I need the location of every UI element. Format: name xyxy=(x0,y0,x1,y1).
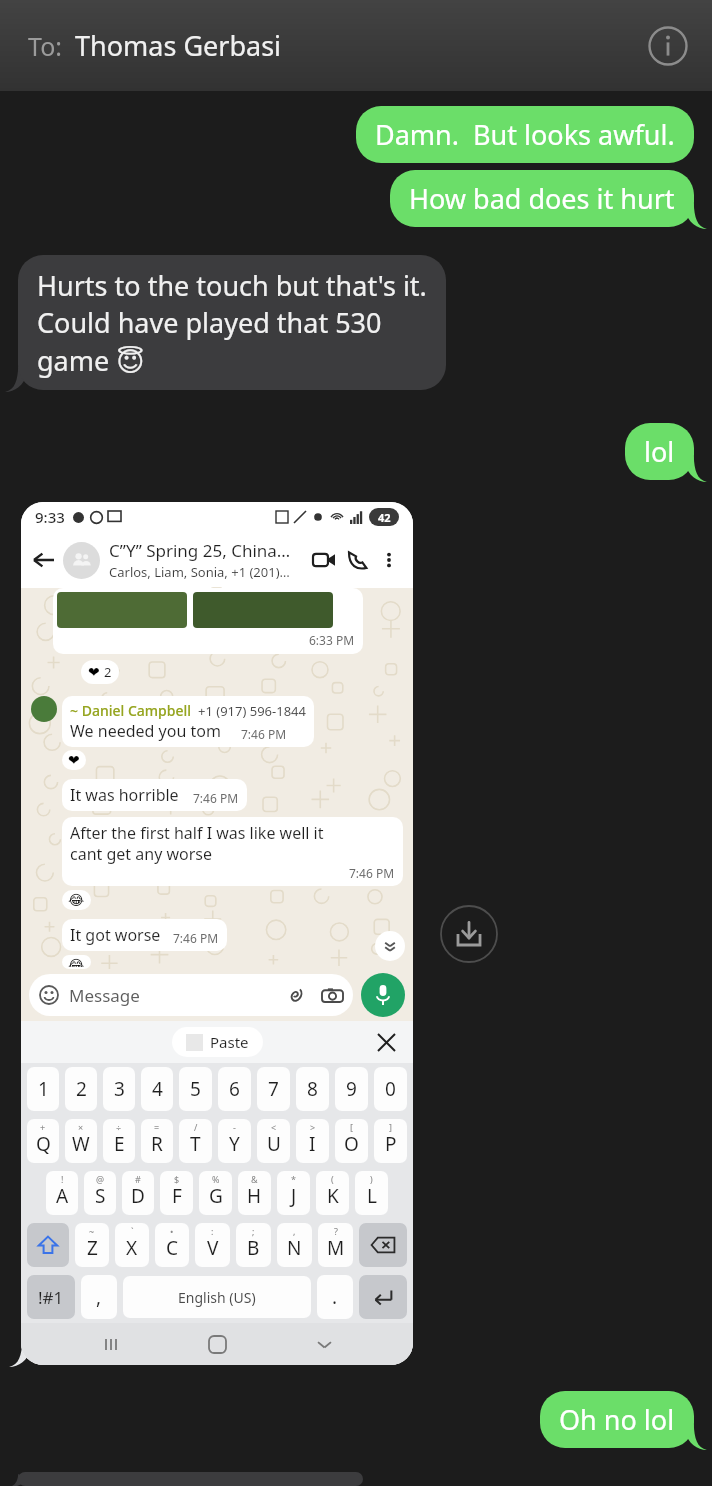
button[interactable]: 7 xyxy=(257,1067,290,1111)
staticText: 5 xyxy=(190,1076,201,1102)
staticText: 7:46 PM xyxy=(173,930,219,946)
button[interactable]: # xyxy=(122,1171,154,1215)
button[interactable]: Oh no lol xyxy=(540,1391,694,1448)
button[interactable]: Hide keyboard xyxy=(307,1327,341,1361)
button[interactable]: Conversation details xyxy=(644,22,692,70)
button[interactable]: Dismiss xyxy=(373,1029,399,1055)
button[interactable]: Voice call xyxy=(341,543,375,577)
staticText: • xyxy=(170,1225,174,1237)
button[interactable]: Video call xyxy=(307,543,341,577)
button[interactable]: 3 xyxy=(103,1067,135,1111)
button[interactable]: ~ xyxy=(75,1223,109,1267)
staticText: C”Y” Spring 25, China… xyxy=(109,539,291,562)
button[interactable]: * xyxy=(277,1171,310,1215)
button[interactable]: - xyxy=(218,1119,251,1163)
button[interactable]: Enter xyxy=(359,1275,407,1319)
button[interactable]: 0 xyxy=(374,1067,407,1111)
button[interactable]: ` xyxy=(115,1223,149,1267)
button[interactable]: 6 xyxy=(218,1067,251,1111)
button[interactable]: lol xyxy=(625,423,694,480)
button[interactable]: , xyxy=(277,1223,312,1267)
staticText: Z xyxy=(87,1235,98,1261)
other: Attach xyxy=(286,985,306,1005)
button[interactable]: More options xyxy=(375,546,403,574)
button[interactable]: !#1 xyxy=(27,1275,75,1319)
staticText: H xyxy=(247,1183,262,1209)
staticText: 7:46 PM xyxy=(241,726,287,742)
button[interactable]: ÷ xyxy=(103,1119,135,1163)
button[interactable]: ? xyxy=(318,1223,353,1267)
button[interactable]: / xyxy=(179,1119,212,1163)
button[interactable]: English (US) xyxy=(123,1276,311,1318)
button[interactable]: How bad does it hurt xyxy=(390,170,694,227)
button[interactable]: ; xyxy=(236,1223,271,1267)
button[interactable]: ) xyxy=(355,1171,388,1215)
staticText: + xyxy=(40,1121,46,1133)
staticText: 😂 xyxy=(68,892,85,908)
button[interactable]: @ xyxy=(84,1171,116,1215)
button[interactable]: ( xyxy=(316,1171,349,1215)
button[interactable]: Home xyxy=(200,1327,234,1361)
staticText: < xyxy=(271,1121,277,1133)
button[interactable]: Hurts to the touch but that's it. Could … xyxy=(18,255,446,390)
button[interactable]: Recents xyxy=(94,1327,128,1361)
staticText: S xyxy=(95,1183,106,1209)
staticText: +1 (917) 596-1844 xyxy=(198,702,306,720)
staticText: 😂 xyxy=(68,957,85,967)
button[interactable]: Backspace xyxy=(359,1223,407,1267)
staticText: To: xyxy=(28,29,62,63)
button[interactable]: • xyxy=(155,1223,189,1267)
button[interactable]: > xyxy=(296,1119,329,1163)
staticText: X xyxy=(126,1235,138,1261)
button[interactable]: 8 xyxy=(296,1067,329,1111)
button[interactable]: Record voice message xyxy=(361,973,405,1017)
button[interactable]: 5 xyxy=(179,1067,212,1111)
button[interactable]: % xyxy=(199,1171,232,1215)
button[interactable]: Message xyxy=(29,974,353,1016)
button[interactable]: 9:33 xyxy=(21,502,413,1365)
button[interactable]: 2 xyxy=(65,1067,97,1111)
staticText: Carlos, Liam, Sonia, +1 (201)… xyxy=(109,563,290,581)
button[interactable]: ! xyxy=(46,1171,78,1215)
staticText: ` xyxy=(131,1225,134,1237)
staticText: L xyxy=(367,1183,377,1209)
staticText: K xyxy=(327,1183,339,1209)
button[interactable]: 4 xyxy=(141,1067,173,1111)
staticText: E xyxy=(114,1131,125,1157)
staticText: 6:33 PM xyxy=(309,632,355,648)
button[interactable]: . xyxy=(317,1275,353,1319)
staticText: 1 xyxy=(38,1076,49,1102)
staticText: C xyxy=(166,1235,179,1261)
staticText: × xyxy=(78,1121,84,1133)
button[interactable]: < xyxy=(257,1119,290,1163)
button[interactable]: 9 xyxy=(335,1067,368,1111)
staticText: Paste xyxy=(210,1032,249,1052)
button[interactable]: Damn. But looks awful. xyxy=(356,106,694,163)
button[interactable]: × xyxy=(65,1119,97,1163)
button[interactable]: Paste xyxy=(172,1027,263,1057)
staticText: ~ Daniel Campbell xyxy=(70,701,192,720)
button[interactable]: [ xyxy=(335,1119,368,1163)
button[interactable]: & xyxy=(238,1171,271,1215)
staticText: 42 xyxy=(378,510,391,525)
button[interactable]: Back xyxy=(31,547,57,573)
staticText: ❤️ xyxy=(68,752,80,768)
staticText: : xyxy=(211,1225,214,1237)
button[interactable]: , xyxy=(81,1275,117,1319)
button[interactable]: : xyxy=(195,1223,230,1267)
staticText: Y xyxy=(229,1131,240,1157)
button[interactable]: Save attachment xyxy=(440,905,498,963)
button[interactable]: = xyxy=(141,1119,173,1163)
button[interactable]: $ xyxy=(160,1171,193,1215)
staticText: ! xyxy=(61,1173,64,1185)
staticText: 6 xyxy=(229,1076,240,1102)
staticText: It got worse xyxy=(70,924,161,946)
button[interactable]: Scroll to bottom xyxy=(375,931,405,961)
staticText: After the first half I was like well it … xyxy=(70,822,324,865)
staticText: !#1 xyxy=(38,1286,64,1309)
button[interactable]: + xyxy=(27,1119,59,1163)
button[interactable]: Shift xyxy=(27,1223,69,1267)
button[interactable]: 1 xyxy=(27,1067,59,1111)
button[interactable]: ] xyxy=(374,1119,407,1163)
